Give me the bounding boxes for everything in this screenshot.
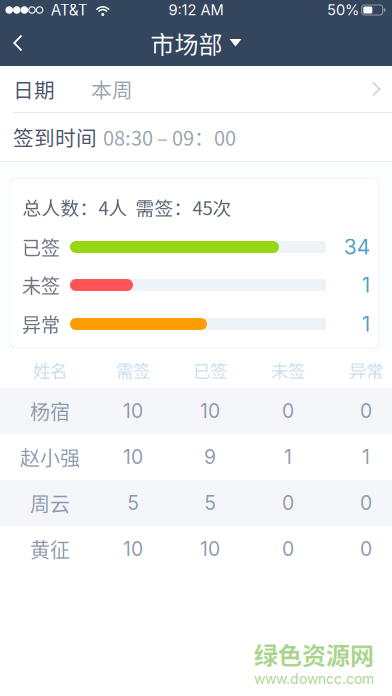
staticText: 异常 <box>349 357 383 383</box>
staticText: 本周 <box>91 74 133 104</box>
staticText: 0 <box>282 491 294 515</box>
staticText: 已签 <box>22 233 60 261</box>
staticText: 未签 <box>22 271 60 299</box>
staticText: 5 <box>204 491 215 515</box>
staticText: 0 <box>360 491 372 515</box>
staticText: 姓名 <box>33 357 67 383</box>
staticText: 1 <box>362 445 370 469</box>
staticText: 34 <box>344 234 370 259</box>
staticText: 10 <box>123 399 143 423</box>
staticText: 5 <box>127 491 138 515</box>
staticText: 0 <box>360 399 372 423</box>
staticText: 黄征 <box>30 534 70 563</box>
staticText: 0 <box>282 537 294 561</box>
staticText: 需签 <box>116 357 150 383</box>
staticText: 已签 <box>193 357 227 383</box>
staticText: 1 <box>362 272 370 297</box>
staticText: 周云 <box>30 488 70 517</box>
staticText: 1 <box>362 311 370 336</box>
staticText: 未签 <box>271 357 305 383</box>
staticText: 9:12 AM <box>168 1 223 19</box>
staticText: 市场部 <box>150 26 222 60</box>
staticText: 10 <box>123 445 143 469</box>
staticText: 10 <box>123 537 143 561</box>
staticText: 异常 <box>22 310 60 338</box>
staticText: 0 <box>282 399 294 423</box>
button[interactable]: 日期 <box>0 66 392 112</box>
staticText: 1 <box>284 445 292 469</box>
staticText: 10 <box>200 399 220 423</box>
button[interactable]: 签到时间 <box>0 113 392 161</box>
staticText: 9 <box>204 445 216 469</box>
staticText: 杨宿 <box>30 396 70 425</box>
staticText: 总人数：4人 需签：45次 <box>22 193 231 220</box>
staticText: 赵小强 <box>20 442 80 471</box>
staticText: 08:30 – 09：00 <box>103 122 236 151</box>
staticText: AT&T <box>43 1 88 19</box>
button[interactable]: Back <box>0 21 40 64</box>
staticText: 绿色资源网 <box>254 637 374 671</box>
staticText: 10 <box>200 537 220 561</box>
staticText: www.downcc.com <box>254 670 374 687</box>
staticText: 0 <box>360 537 372 561</box>
button[interactable]: 市场部 <box>140 20 251 66</box>
staticText: 50% <box>327 1 359 19</box>
staticText: 签到时间 <box>13 122 97 152</box>
staticText: 日期 <box>13 74 55 104</box>
